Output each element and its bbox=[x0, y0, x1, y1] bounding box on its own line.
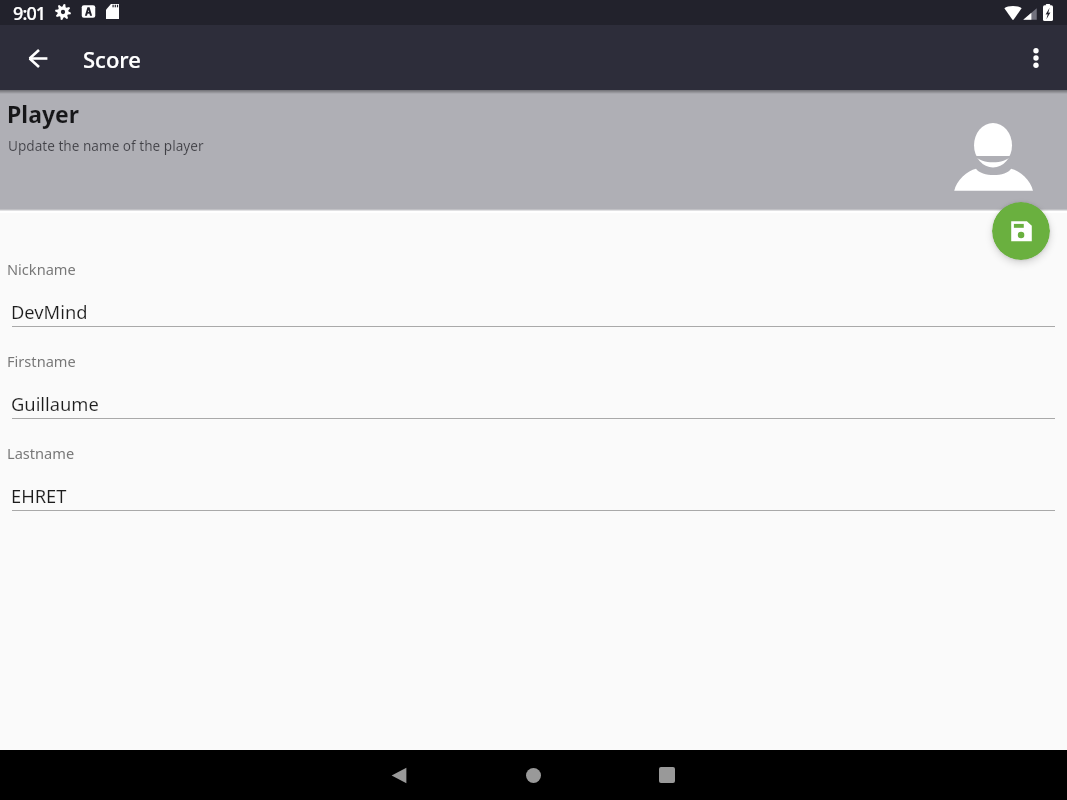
button[interactable]: Firstname bbox=[0, 350, 1067, 422]
button[interactable]: Lastname bbox=[0, 442, 1067, 514]
staticText: Player bbox=[7, 98, 80, 129]
button[interactable]: Back bbox=[18, 38, 58, 78]
button[interactable]: Recent apps bbox=[643, 751, 691, 799]
staticText: EHRET bbox=[11, 483, 67, 508]
button[interactable]: Nickname bbox=[0, 258, 1067, 330]
staticText: DevMind bbox=[11, 299, 88, 324]
staticText: Score bbox=[83, 44, 141, 74]
button[interactable]: Save bbox=[992, 202, 1050, 260]
button[interactable]: Back bbox=[375, 751, 423, 799]
staticText: Nickname bbox=[7, 259, 76, 279]
button[interactable]: Home bbox=[509, 751, 557, 799]
button[interactable]: More options bbox=[1016, 38, 1056, 78]
staticText: 9:01 bbox=[13, 1, 46, 26]
staticText: Firstname bbox=[7, 351, 76, 371]
staticText: Update the name of the player bbox=[8, 136, 204, 155]
staticText: Guillaume bbox=[11, 391, 99, 416]
staticText: Lastname bbox=[7, 443, 75, 463]
